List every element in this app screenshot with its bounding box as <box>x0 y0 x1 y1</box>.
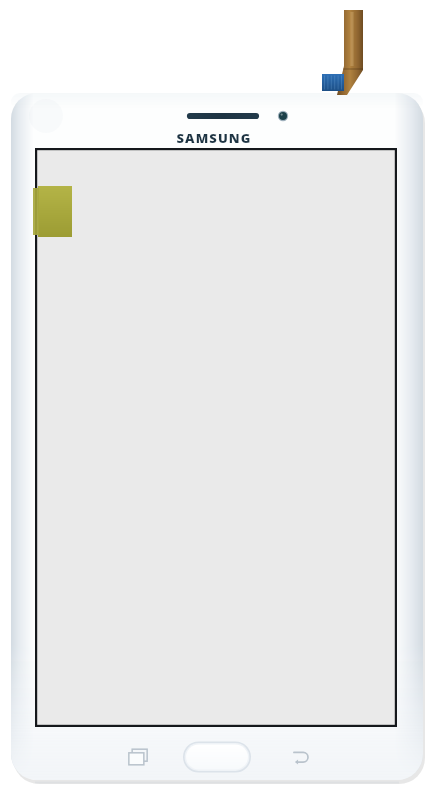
button[interactable]: Back <box>282 740 322 776</box>
button[interactable]: Home <box>183 740 251 776</box>
staticText: SAMSUNG <box>176 129 252 147</box>
button[interactable]: Recent apps <box>120 740 160 776</box>
